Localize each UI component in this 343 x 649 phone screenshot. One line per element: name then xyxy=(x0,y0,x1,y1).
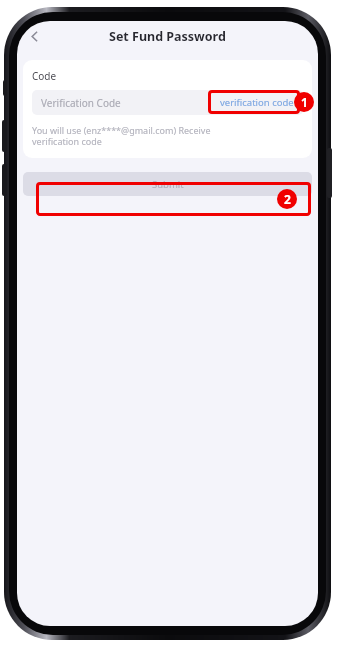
staticText: 1 xyxy=(301,94,308,110)
button[interactable]: Submit xyxy=(23,172,312,196)
staticText: verification code xyxy=(220,96,294,109)
button[interactable]: verification code xyxy=(217,93,297,112)
button[interactable]: Verification Code xyxy=(32,90,303,115)
staticText: Submit xyxy=(152,178,184,191)
staticText: Set Fund Password xyxy=(109,28,226,45)
staticText: 2 xyxy=(284,191,291,207)
staticText: Verification Code xyxy=(41,96,121,110)
staticText: Code xyxy=(32,69,57,83)
staticText: You will use (enz****@gmail.com) Receive… xyxy=(32,124,211,148)
button[interactable]: Back xyxy=(21,23,47,49)
